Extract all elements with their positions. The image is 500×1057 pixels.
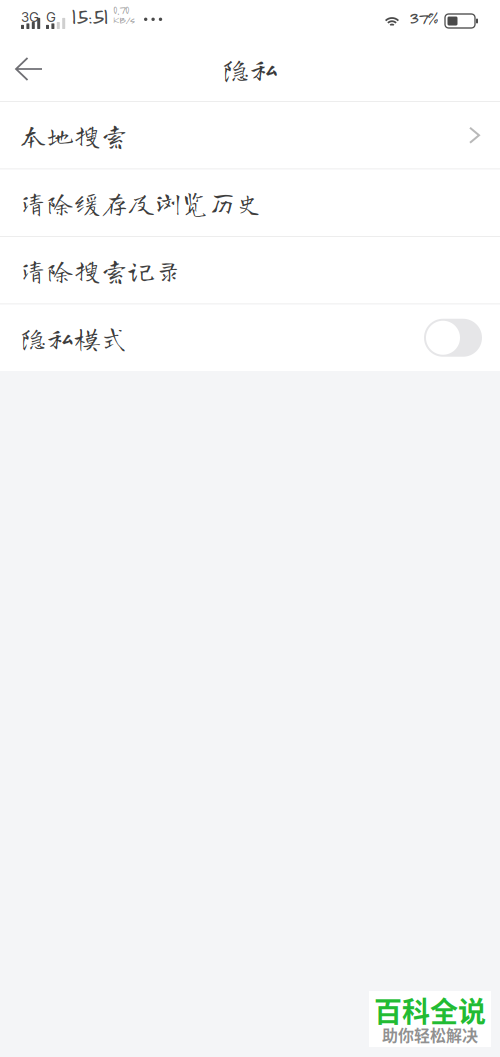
staticText: KB/s xyxy=(113,13,135,26)
button[interactable]: Privacy mode xyxy=(424,319,482,357)
staticText: 本地搜索 xyxy=(20,122,128,149)
staticText: 百科全说 xyxy=(374,990,486,1030)
staticText: 15:51 xyxy=(71,1,108,29)
staticText: 37% xyxy=(409,6,438,29)
button[interactable]: Back xyxy=(4,45,54,93)
staticText: G xyxy=(46,9,56,25)
staticText: 0.70 xyxy=(113,2,129,17)
staticText: 助你轻松解决 xyxy=(382,1023,478,1046)
button[interactable]: 本地搜索 xyxy=(0,102,500,168)
button[interactable]: 隐私模式 xyxy=(0,304,500,371)
staticText: 3G xyxy=(21,9,39,25)
staticText: 隐私 xyxy=(222,55,278,83)
staticText: 隐私模式 xyxy=(20,324,128,351)
button[interactable]: 清除缓存及浏览历史 xyxy=(0,169,500,236)
staticText: 清除缓存及浏览历史 xyxy=(20,189,263,216)
button[interactable]: 清除搜索记录 xyxy=(0,237,500,303)
staticText: 清除搜索记录 xyxy=(20,257,182,284)
